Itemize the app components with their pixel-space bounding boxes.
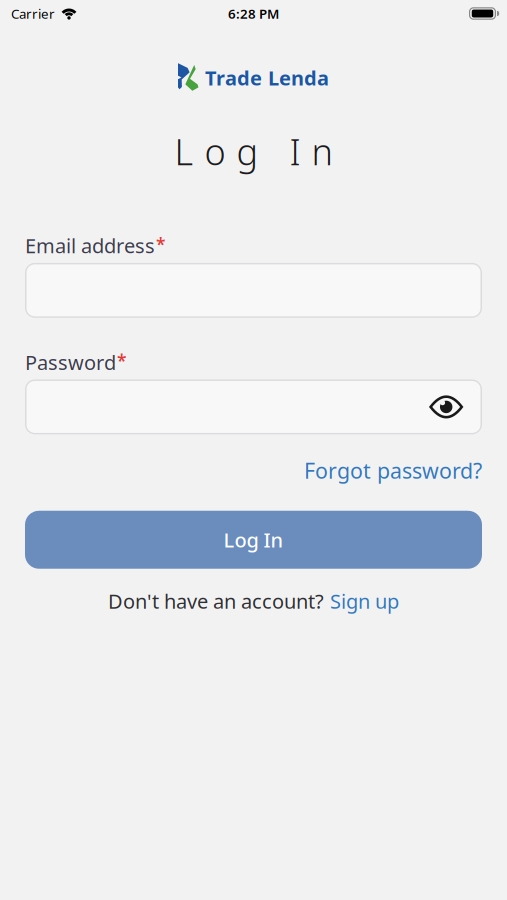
staticText: Forgot password? (304, 456, 482, 485)
button[interactable]: Log In (25, 511, 482, 569)
staticText: Log In (174, 127, 332, 175)
button[interactable] (25, 379, 482, 434)
staticText: Sign up (330, 588, 399, 614)
staticText: * (156, 233, 165, 256)
staticText: Lenda (268, 64, 329, 91)
staticText: 6:28 PM (228, 5, 279, 22)
staticText: Log In (223, 526, 283, 553)
staticText: Trade (205, 64, 262, 91)
button[interactable]: Forgot password? (304, 456, 482, 485)
staticText: Carrier (11, 5, 55, 22)
staticText: Don't have an account? (108, 588, 324, 614)
button[interactable] (25, 263, 482, 318)
staticText: * (117, 349, 126, 372)
button[interactable]: Sign up (330, 588, 399, 614)
staticText: Password (25, 349, 116, 375)
staticText: Email address (25, 232, 155, 259)
